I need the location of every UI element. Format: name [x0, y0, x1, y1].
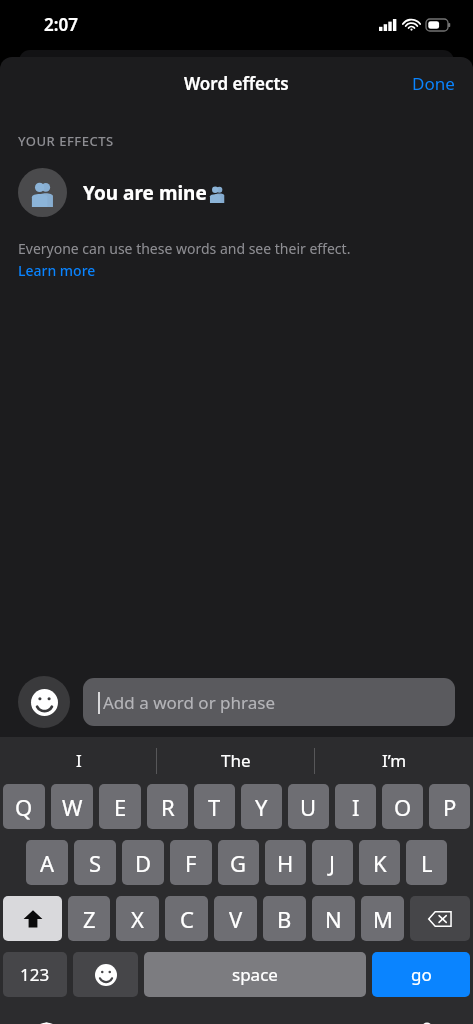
- staticText: go: [411, 963, 432, 986]
- staticText: P: [443, 792, 457, 822]
- staticText: space: [232, 963, 278, 986]
- button[interactable]: S: [74, 840, 116, 885]
- button[interactable]: I: [0, 737, 157, 784]
- button[interactable]: O: [382, 784, 423, 829]
- button[interactable]: I’m: [315, 737, 473, 784]
- staticText: D: [135, 848, 152, 878]
- staticText: W: [62, 792, 83, 822]
- staticText: J: [329, 848, 336, 878]
- staticText: Everyone can use these words and see the…: [18, 239, 351, 258]
- staticText: Z: [83, 904, 96, 934]
- staticText: I: [352, 792, 360, 822]
- button[interactable]: space: [144, 952, 366, 997]
- button[interactable]: Change keyboard language: [24, 1013, 68, 1024]
- button[interactable]: W: [51, 784, 93, 829]
- staticText: K: [373, 848, 387, 878]
- staticText: Q: [15, 792, 33, 822]
- staticText: E: [114, 792, 127, 822]
- staticText: C: [180, 904, 194, 934]
- staticText: 123: [20, 963, 50, 986]
- button[interactable]: R: [147, 784, 188, 829]
- staticText: V: [229, 904, 243, 934]
- button[interactable]: F: [170, 840, 212, 885]
- button[interactable]: E: [99, 784, 141, 829]
- staticText: Add a word or phrase: [103, 691, 275, 714]
- staticText: You are mine: [83, 180, 207, 206]
- staticText: S: [89, 848, 102, 878]
- button[interactable]: Add a word or phrase: [83, 678, 455, 726]
- staticText: G: [230, 848, 247, 878]
- staticText: N: [325, 904, 342, 934]
- button[interactable]: G: [218, 840, 259, 885]
- staticText: X: [131, 904, 144, 934]
- staticText: Y: [255, 792, 268, 822]
- button[interactable]: Done: [394, 64, 473, 103]
- button[interactable]: D: [122, 840, 164, 885]
- staticText: B: [277, 904, 292, 934]
- button[interactable]: Learn more: [18, 261, 96, 280]
- staticText: M: [373, 904, 393, 934]
- button[interactable]: M: [361, 896, 404, 941]
- button[interactable]: Emoji keyboard: [73, 952, 138, 997]
- staticText: O: [394, 792, 412, 822]
- staticText: U: [300, 792, 317, 822]
- staticText: Word effects: [184, 72, 289, 95]
- staticText: I: [76, 749, 82, 772]
- button[interactable]: Y: [241, 784, 282, 829]
- button[interactable]: I: [335, 784, 376, 829]
- button[interactable]: You are mine: [18, 168, 455, 217]
- button[interactable]: Shift: [3, 896, 62, 941]
- button[interactable]: Q: [3, 784, 45, 829]
- button[interactable]: Emoji: [18, 676, 70, 728]
- button[interactable]: 123: [3, 952, 67, 997]
- button[interactable]: H: [265, 840, 306, 885]
- staticText: I’m: [382, 749, 407, 772]
- button[interactable]: X: [116, 896, 159, 941]
- button[interactable]: J: [312, 840, 353, 885]
- button[interactable]: U: [288, 784, 329, 829]
- button[interactable]: The: [157, 737, 315, 784]
- button[interactable]: Backspace: [410, 896, 470, 941]
- button[interactable]: K: [359, 840, 400, 885]
- button[interactable]: A: [26, 840, 68, 885]
- button[interactable]: Z: [68, 896, 110, 941]
- button[interactable]: Dictation: [405, 1013, 449, 1024]
- staticText: H: [277, 848, 294, 878]
- button[interactable]: T: [194, 784, 235, 829]
- staticText: L: [421, 848, 433, 878]
- staticText: The: [221, 749, 251, 772]
- button[interactable]: L: [406, 840, 447, 885]
- staticText: F: [185, 848, 197, 878]
- staticText: R: [161, 792, 175, 822]
- staticText: YOUR EFFECTS: [18, 132, 114, 150]
- staticText: Learn more: [18, 261, 96, 280]
- button[interactable]: B: [263, 896, 306, 941]
- button[interactable]: N: [312, 896, 355, 941]
- staticText: A: [40, 848, 55, 878]
- button[interactable]: V: [214, 896, 257, 941]
- button[interactable]: go: [372, 952, 470, 997]
- button[interactable]: C: [165, 896, 208, 941]
- button[interactable]: P: [429, 784, 470, 829]
- staticText: 2:07: [44, 13, 78, 36]
- staticText: T: [208, 792, 221, 822]
- staticText: Done: [412, 72, 455, 95]
